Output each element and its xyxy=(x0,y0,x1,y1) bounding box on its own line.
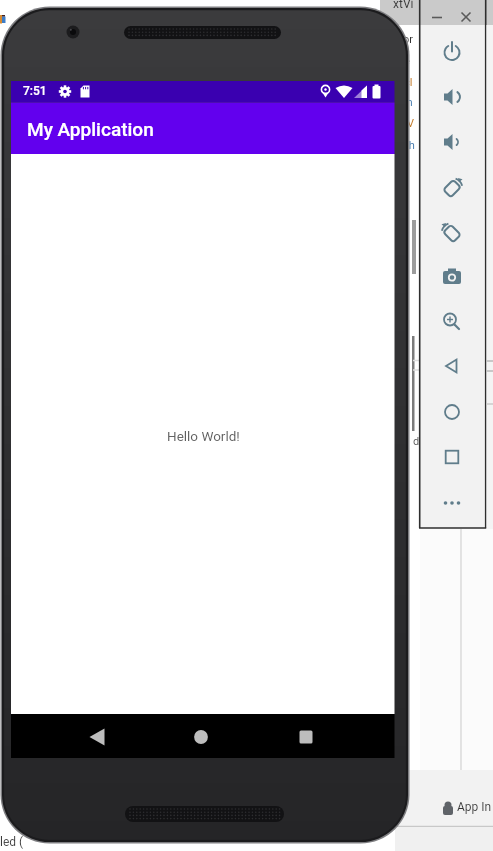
button[interactable] xyxy=(434,259,470,295)
staticText: r xyxy=(400,801,405,815)
button[interactable] xyxy=(434,214,470,250)
button[interactable] xyxy=(434,485,470,521)
staticText: led ( xyxy=(0,835,24,849)
button[interactable] xyxy=(434,169,470,205)
staticText: d xyxy=(413,435,420,448)
button[interactable] xyxy=(434,394,470,430)
staticText: IV xyxy=(404,117,414,130)
button[interactable] xyxy=(434,304,470,340)
staticText: e xyxy=(404,55,410,68)
button[interactable] xyxy=(428,8,446,26)
staticText: ch xyxy=(403,139,415,152)
button[interactable] xyxy=(434,124,470,160)
button[interactable] xyxy=(434,79,470,115)
staticText: cl xyxy=(404,76,413,89)
button[interactable] xyxy=(73,714,121,758)
button[interactable] xyxy=(282,714,330,758)
button[interactable] xyxy=(434,348,470,384)
button[interactable] xyxy=(434,34,470,70)
staticText: xtVi xyxy=(393,0,414,11)
staticText: or xyxy=(403,33,414,46)
button[interactable] xyxy=(434,439,470,475)
staticText: Hello World! xyxy=(167,428,240,444)
staticText: My Application xyxy=(27,118,154,140)
button[interactable] xyxy=(177,714,225,758)
staticText: m xyxy=(403,96,413,109)
button[interactable] xyxy=(457,8,475,26)
staticText: App In xyxy=(457,800,492,814)
staticText: 7:51 xyxy=(23,84,47,98)
